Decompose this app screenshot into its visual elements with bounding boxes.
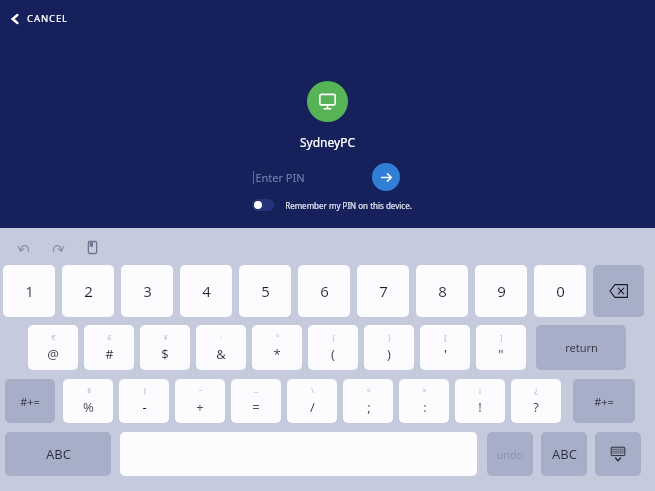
staticText: § xyxy=(87,386,91,396)
staticText: ( xyxy=(331,345,335,363)
staticText: undo xyxy=(496,447,524,462)
button[interactable]: Remember my PIN on this device. xyxy=(250,197,414,213)
staticText: ¡ xyxy=(479,386,481,396)
staticText: 0 xyxy=(556,281,565,301)
staticText: 3 xyxy=(143,281,152,301)
button[interactable]: Enter PIN xyxy=(253,164,365,190)
staticText: #+= xyxy=(594,394,614,409)
button[interactable]: < xyxy=(343,379,393,423)
button[interactable]: ¿ xyxy=(511,379,561,423)
button[interactable]: 3 xyxy=(121,265,173,317)
staticText: ' xyxy=(444,345,447,363)
staticText: return xyxy=(565,340,598,355)
button[interactable]: € xyxy=(28,325,78,370)
staticText: [ xyxy=(444,333,447,343)
staticText: SydneyPC xyxy=(300,134,355,150)
button[interactable]: ¡ xyxy=(455,379,505,423)
staticText: = xyxy=(252,398,260,416)
staticText: 7 xyxy=(379,281,388,301)
staticText: { xyxy=(332,333,335,343)
button[interactable]: 4 xyxy=(180,265,232,317)
staticText: / xyxy=(310,398,315,416)
button[interactable]: ° xyxy=(252,325,302,370)
button[interactable]: Submit PIN xyxy=(372,163,400,191)
staticText: ABC xyxy=(552,445,577,463)
button[interactable]: Redo xyxy=(46,236,68,258)
staticText: · xyxy=(220,333,222,343)
staticText: @ xyxy=(47,345,59,363)
button[interactable]: CANCEL xyxy=(5,9,73,28)
button[interactable]: Backspace xyxy=(593,265,644,317)
staticText: Remember my PIN on this device. xyxy=(285,200,412,211)
staticText: 9 xyxy=(497,281,506,301)
button[interactable]: } xyxy=(364,325,414,370)
button[interactable]: 6 xyxy=(298,265,350,317)
staticText: ¿ xyxy=(534,386,538,396)
button[interactable]: \ xyxy=(287,379,337,423)
button[interactable]: 5 xyxy=(239,265,291,317)
button[interactable]: #+= xyxy=(573,379,635,423)
button[interactable]: 8 xyxy=(416,265,468,317)
button[interactable]: · xyxy=(196,325,246,370)
staticText: 2 xyxy=(84,281,93,301)
staticText: Enter PIN xyxy=(255,170,305,185)
staticText: - xyxy=(142,398,147,416)
button[interactable]: undo xyxy=(487,432,533,476)
button[interactable]: § xyxy=(63,379,113,423)
button[interactable]: 7 xyxy=(357,265,409,317)
staticText: 8 xyxy=(438,281,447,301)
staticText: £ xyxy=(107,333,112,343)
button[interactable]: > xyxy=(399,379,449,423)
button[interactable]: Device SydneyPC xyxy=(307,81,348,122)
button[interactable]: { xyxy=(308,325,358,370)
button[interactable]: 9 xyxy=(475,265,527,317)
staticText: + xyxy=(196,398,204,416)
staticText: " xyxy=(498,345,504,363)
button[interactable]: 2 xyxy=(62,265,114,317)
button[interactable]: ABC xyxy=(5,432,111,476)
staticText: * xyxy=(273,345,281,363)
button[interactable]: Undo xyxy=(13,236,35,258)
staticText: ¥ xyxy=(163,333,168,343)
button[interactable]: ~ xyxy=(175,379,225,423)
staticText: : xyxy=(423,398,427,416)
button[interactable]: 1 xyxy=(3,265,55,317)
staticText: \ xyxy=(311,386,314,396)
staticText: … xyxy=(253,386,259,396)
staticText: 4 xyxy=(202,281,211,301)
staticText: 6 xyxy=(320,281,329,301)
staticText: ; xyxy=(367,398,371,416)
staticText: ABC xyxy=(46,445,71,463)
button[interactable]: ABC xyxy=(541,432,587,476)
button[interactable]: £ xyxy=(84,325,134,370)
staticText: 1 xyxy=(25,281,34,301)
staticText: & xyxy=(216,345,226,363)
button[interactable]: Hide keyboard xyxy=(595,432,641,476)
button[interactable]: ¥ xyxy=(140,325,190,370)
staticText: < xyxy=(366,386,371,396)
staticText: $ xyxy=(161,345,169,363)
staticText: € xyxy=(51,333,56,343)
button[interactable]: ] xyxy=(476,325,526,370)
staticText: 5 xyxy=(261,281,270,301)
button[interactable]: #+= xyxy=(5,379,55,423)
button[interactable]: Paste xyxy=(81,236,103,258)
staticText: ? xyxy=(533,398,539,416)
staticText: } xyxy=(388,333,391,343)
staticText: ~ xyxy=(198,386,203,396)
button[interactable]: 0 xyxy=(534,265,586,317)
button[interactable]: return xyxy=(536,325,626,370)
staticText: # xyxy=(105,345,114,363)
staticText: > xyxy=(422,386,427,396)
staticText: ! xyxy=(478,398,482,416)
staticText: | xyxy=(143,386,147,396)
button[interactable]: … xyxy=(231,379,281,423)
staticText: ) xyxy=(387,345,391,363)
staticText: #+= xyxy=(20,394,40,409)
button[interactable]: [ xyxy=(420,325,470,370)
staticText: ° xyxy=(276,333,279,343)
button[interactable]: | xyxy=(119,379,169,423)
staticText: % xyxy=(83,398,94,416)
staticText: CANCEL xyxy=(27,12,68,25)
